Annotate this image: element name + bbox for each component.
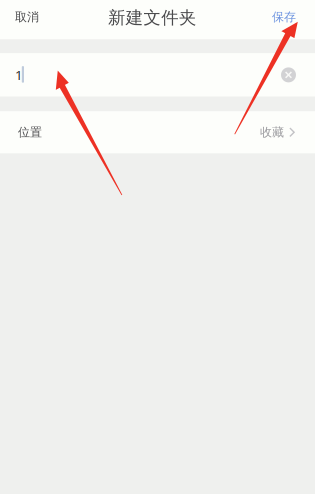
staticText: 1	[15, 66, 23, 84]
button[interactable]: 位置	[0, 111, 315, 153]
staticText: 保存	[272, 10, 296, 24]
staticText: 位置	[18, 125, 42, 140]
button[interactable]: 取消	[0, 3, 51, 36]
staticText: 新建文件夹	[108, 7, 196, 28]
staticText: 取消	[15, 10, 39, 24]
button[interactable]: 1	[0, 53, 315, 97]
button[interactable]: 保存	[260, 3, 315, 36]
button[interactable]: 清除文本	[281, 55, 315, 94]
staticText: 收藏	[260, 125, 284, 140]
